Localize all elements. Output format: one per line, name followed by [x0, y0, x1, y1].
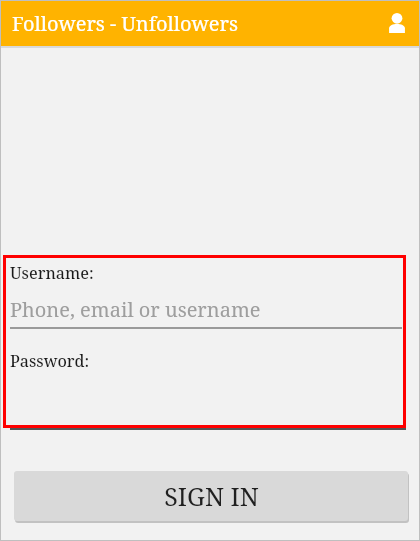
staticText: Followers - Unfollowers	[12, 10, 238, 37]
staticText: SIGN IN	[164, 479, 259, 513]
staticText: Password:	[10, 350, 90, 372]
staticText: Username:	[10, 262, 94, 284]
button[interactable]: Phone, email or username	[10, 296, 402, 329]
button[interactable]: SIGN IN	[14, 471, 408, 521]
staticText: Phone, email or username	[10, 296, 261, 323]
button[interactable]: Account	[382, 8, 412, 38]
